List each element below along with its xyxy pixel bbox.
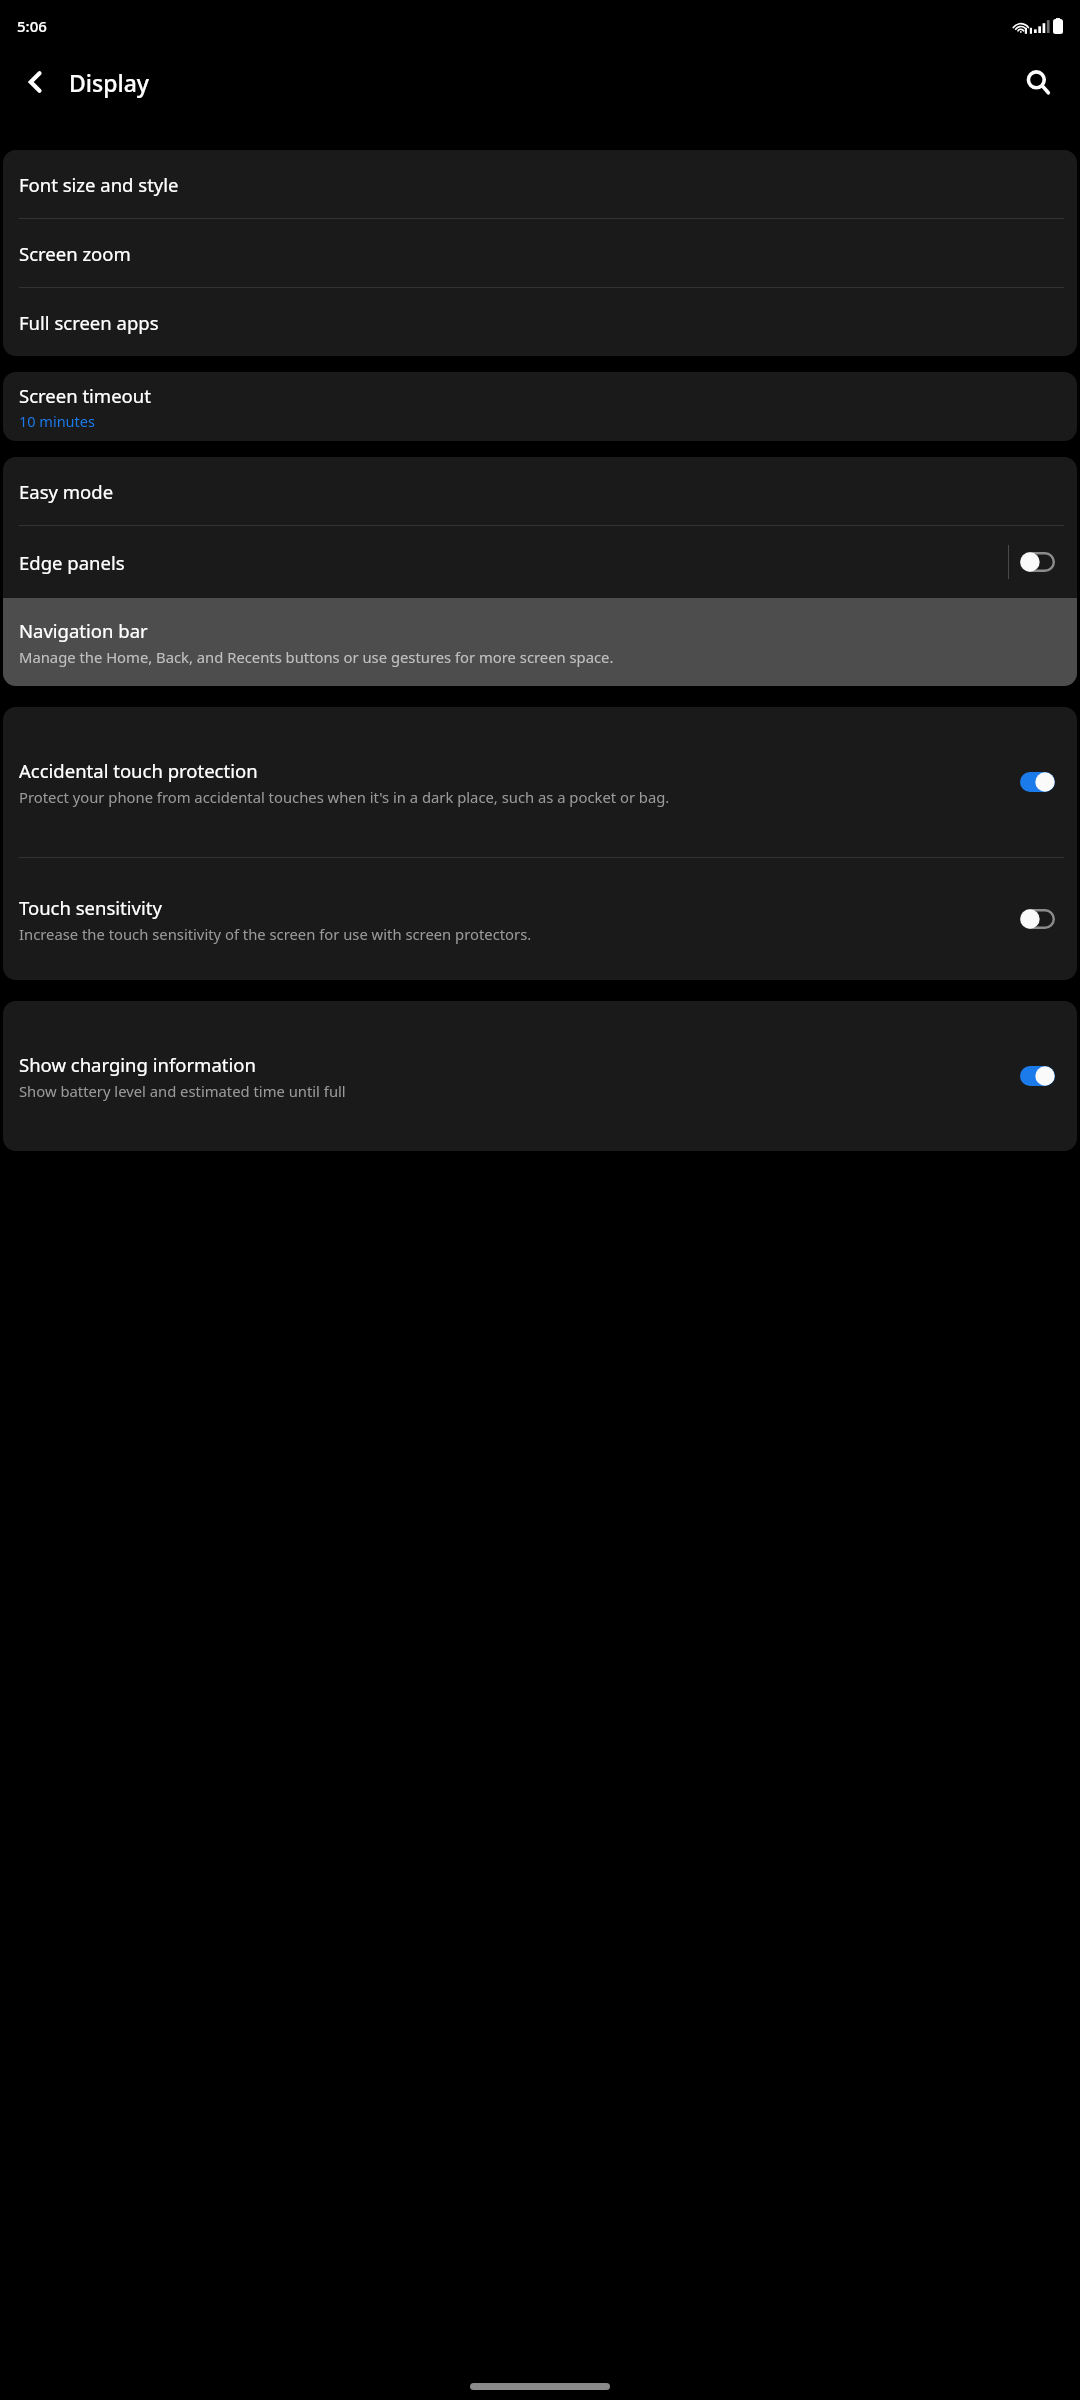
staticText: 5:06 [17, 16, 47, 36]
staticText: Display [69, 67, 149, 98]
staticText: Font size and style [19, 172, 179, 197]
staticText: Increase the touch sensitivity of the sc… [19, 924, 532, 944]
button[interactable]: Toggle off [1020, 909, 1055, 929]
staticText: Show charging information [19, 1052, 256, 1077]
staticText: Accidental touch protection [19, 758, 258, 783]
staticText: Screen timeout [19, 383, 151, 408]
staticText: Manage the Home, Back, and Recents butto… [19, 647, 614, 667]
button[interactable]: Toggle on [1020, 772, 1055, 792]
staticText: 10 minutes [19, 411, 95, 431]
button[interactable]: Full screen apps [3, 288, 1077, 356]
staticText: Edge panels [19, 550, 1008, 575]
button[interactable]: Show charging information [3, 1001, 1077, 1151]
button[interactable]: Navigation bar [3, 598, 1077, 686]
button[interactable]: Screen timeout [3, 372, 1077, 441]
button[interactable]: Edge panels [3, 526, 1077, 598]
button[interactable]: Accidental touch protection [3, 707, 1077, 857]
button[interactable]: Toggle off [1020, 552, 1055, 572]
staticText: Easy mode [19, 479, 114, 504]
staticText: Navigation bar [19, 618, 148, 643]
button[interactable]: Back [12, 58, 60, 106]
button[interactable]: Easy mode [3, 457, 1077, 525]
staticText: Screen zoom [19, 241, 131, 266]
staticText: Protect your phone from accidental touch… [19, 787, 670, 807]
staticText: Touch sensitivity [19, 895, 162, 920]
button[interactable]: Toggle on [1020, 1066, 1055, 1086]
button[interactable]: Search [1014, 58, 1062, 106]
button[interactable]: Screen zoom [3, 219, 1077, 287]
staticText: Show battery level and estimated time un… [19, 1081, 346, 1101]
button[interactable]: Font size and style [3, 150, 1077, 218]
button[interactable]: Touch sensitivity [3, 858, 1077, 980]
staticText: Full screen apps [19, 310, 159, 335]
